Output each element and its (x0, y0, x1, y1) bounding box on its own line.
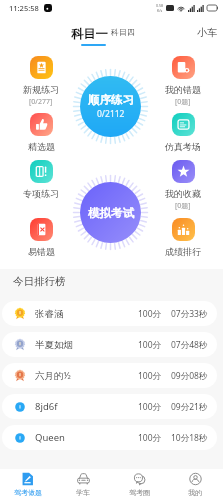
button[interactable]: 我的错题 (155, 56, 211, 107)
button[interactable]: 精选题 (13, 113, 69, 152)
staticText: 100分 (138, 401, 162, 413)
staticText: 09分21秒 (171, 401, 208, 413)
button[interactable]: 张睿涵 (2, 301, 217, 326)
button[interactable]: 驾考圈 (111, 469, 167, 500)
staticText: 07分33秒 (171, 308, 208, 320)
staticText: [0/277] (29, 97, 53, 107)
staticText: 学车 (76, 488, 90, 497)
button[interactable]: 专项练习 (13, 160, 69, 199)
button[interactable]: 我的收藏 (155, 160, 211, 211)
button[interactable]: 科目一 (71, 26, 108, 46)
staticText: 100分 (138, 339, 162, 351)
staticText: 张睿涵 (35, 308, 64, 320)
button[interactable]: 小车 (197, 26, 217, 39)
button[interactable]: 科目四 (111, 27, 135, 37)
staticText: K/s (157, 8, 163, 13)
staticText: 今日排行榜 (13, 275, 66, 288)
staticText: [0题] (175, 201, 191, 211)
staticText: 成绩排行 (165, 246, 201, 257)
staticText: 驾考圈 (129, 488, 150, 497)
staticText: 驾考做题 (14, 488, 42, 497)
staticText: 100分 (138, 308, 162, 320)
staticText: 07分48秒 (171, 339, 208, 351)
staticText: 科目一 (71, 26, 108, 41)
staticText: 0/2112 (97, 108, 125, 120)
button[interactable]: 仿真考场 (155, 113, 211, 152)
staticText: 我的 (188, 488, 202, 497)
button[interactable]: 六月的½ (2, 363, 217, 388)
staticText: Queen (35, 431, 65, 444)
staticText: 0.58 (156, 3, 164, 8)
button[interactable]: 新规练习 (13, 56, 69, 107)
button[interactable]: 顺序练习 (73, 69, 148, 144)
staticText: 新规练习 (23, 84, 59, 95)
button[interactable]: 学车 (55, 469, 111, 500)
staticText: 小车 (197, 26, 217, 39)
staticText: 8jd6f (35, 400, 58, 413)
staticText: 六月的½ (35, 369, 71, 382)
staticText: 易错题 (28, 246, 55, 257)
staticText: 11:25:58 (9, 3, 39, 13)
button[interactable]: Queen (2, 425, 217, 450)
staticText: 半夏如烟 (35, 339, 73, 351)
staticText: 我的错题 (165, 84, 201, 95)
button[interactable]: 8jd6f (2, 394, 217, 419)
staticText: 10分18秒 (171, 432, 208, 444)
button[interactable]: 驾考做题 (0, 469, 55, 500)
button[interactable]: 半夏如烟 (2, 332, 217, 357)
staticText: [0题] (175, 97, 191, 107)
button[interactable]: 我的 (167, 469, 223, 500)
staticText: 顺序练习 (88, 93, 134, 107)
staticText: 模拟考试 (88, 206, 134, 220)
staticText: 仿真考场 (165, 141, 201, 152)
staticText: 我的收藏 (165, 188, 201, 199)
staticText: 100分 (138, 370, 162, 382)
staticText: 精选题 (28, 141, 55, 152)
staticText: 科目四 (111, 27, 135, 37)
staticText: 09分08秒 (171, 370, 208, 382)
staticText: 100分 (138, 432, 162, 444)
staticText: 专项练习 (23, 188, 59, 199)
button[interactable]: 模拟考试 (73, 175, 148, 250)
button[interactable]: 成绩排行 (155, 218, 211, 257)
button[interactable]: 易错题 (13, 218, 69, 257)
